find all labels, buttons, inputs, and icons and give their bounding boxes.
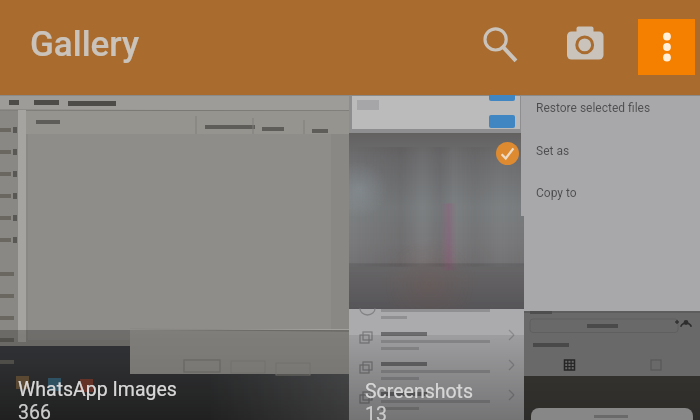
- button[interactable]: More options: [638, 19, 695, 75]
- staticText: Restore selected files: [536, 101, 651, 115]
- button[interactable]: Set as: [521, 130, 700, 172]
- staticText: Gallery: [30, 24, 140, 65]
- button[interactable]: Copy to: [521, 172, 700, 214]
- button[interactable]: [524, 311, 700, 420]
- staticText: 366: [18, 401, 51, 420]
- button[interactable]: Search: [470, 14, 522, 66]
- button[interactable]: WhatsApp Images: [0, 96, 349, 420]
- button[interactable]: [349, 133, 524, 309]
- staticText: WhatsApp Images: [18, 378, 177, 401]
- button[interactable]: Restore selected files: [521, 87, 700, 129]
- staticText: 13: [365, 403, 387, 420]
- button[interactable]: Screenshots: [349, 309, 524, 420]
- button[interactable]: Camera: [560, 14, 612, 66]
- staticText: Screenshots: [365, 380, 474, 403]
- staticText: Copy to: [536, 186, 577, 200]
- staticText: Set as: [536, 144, 570, 158]
